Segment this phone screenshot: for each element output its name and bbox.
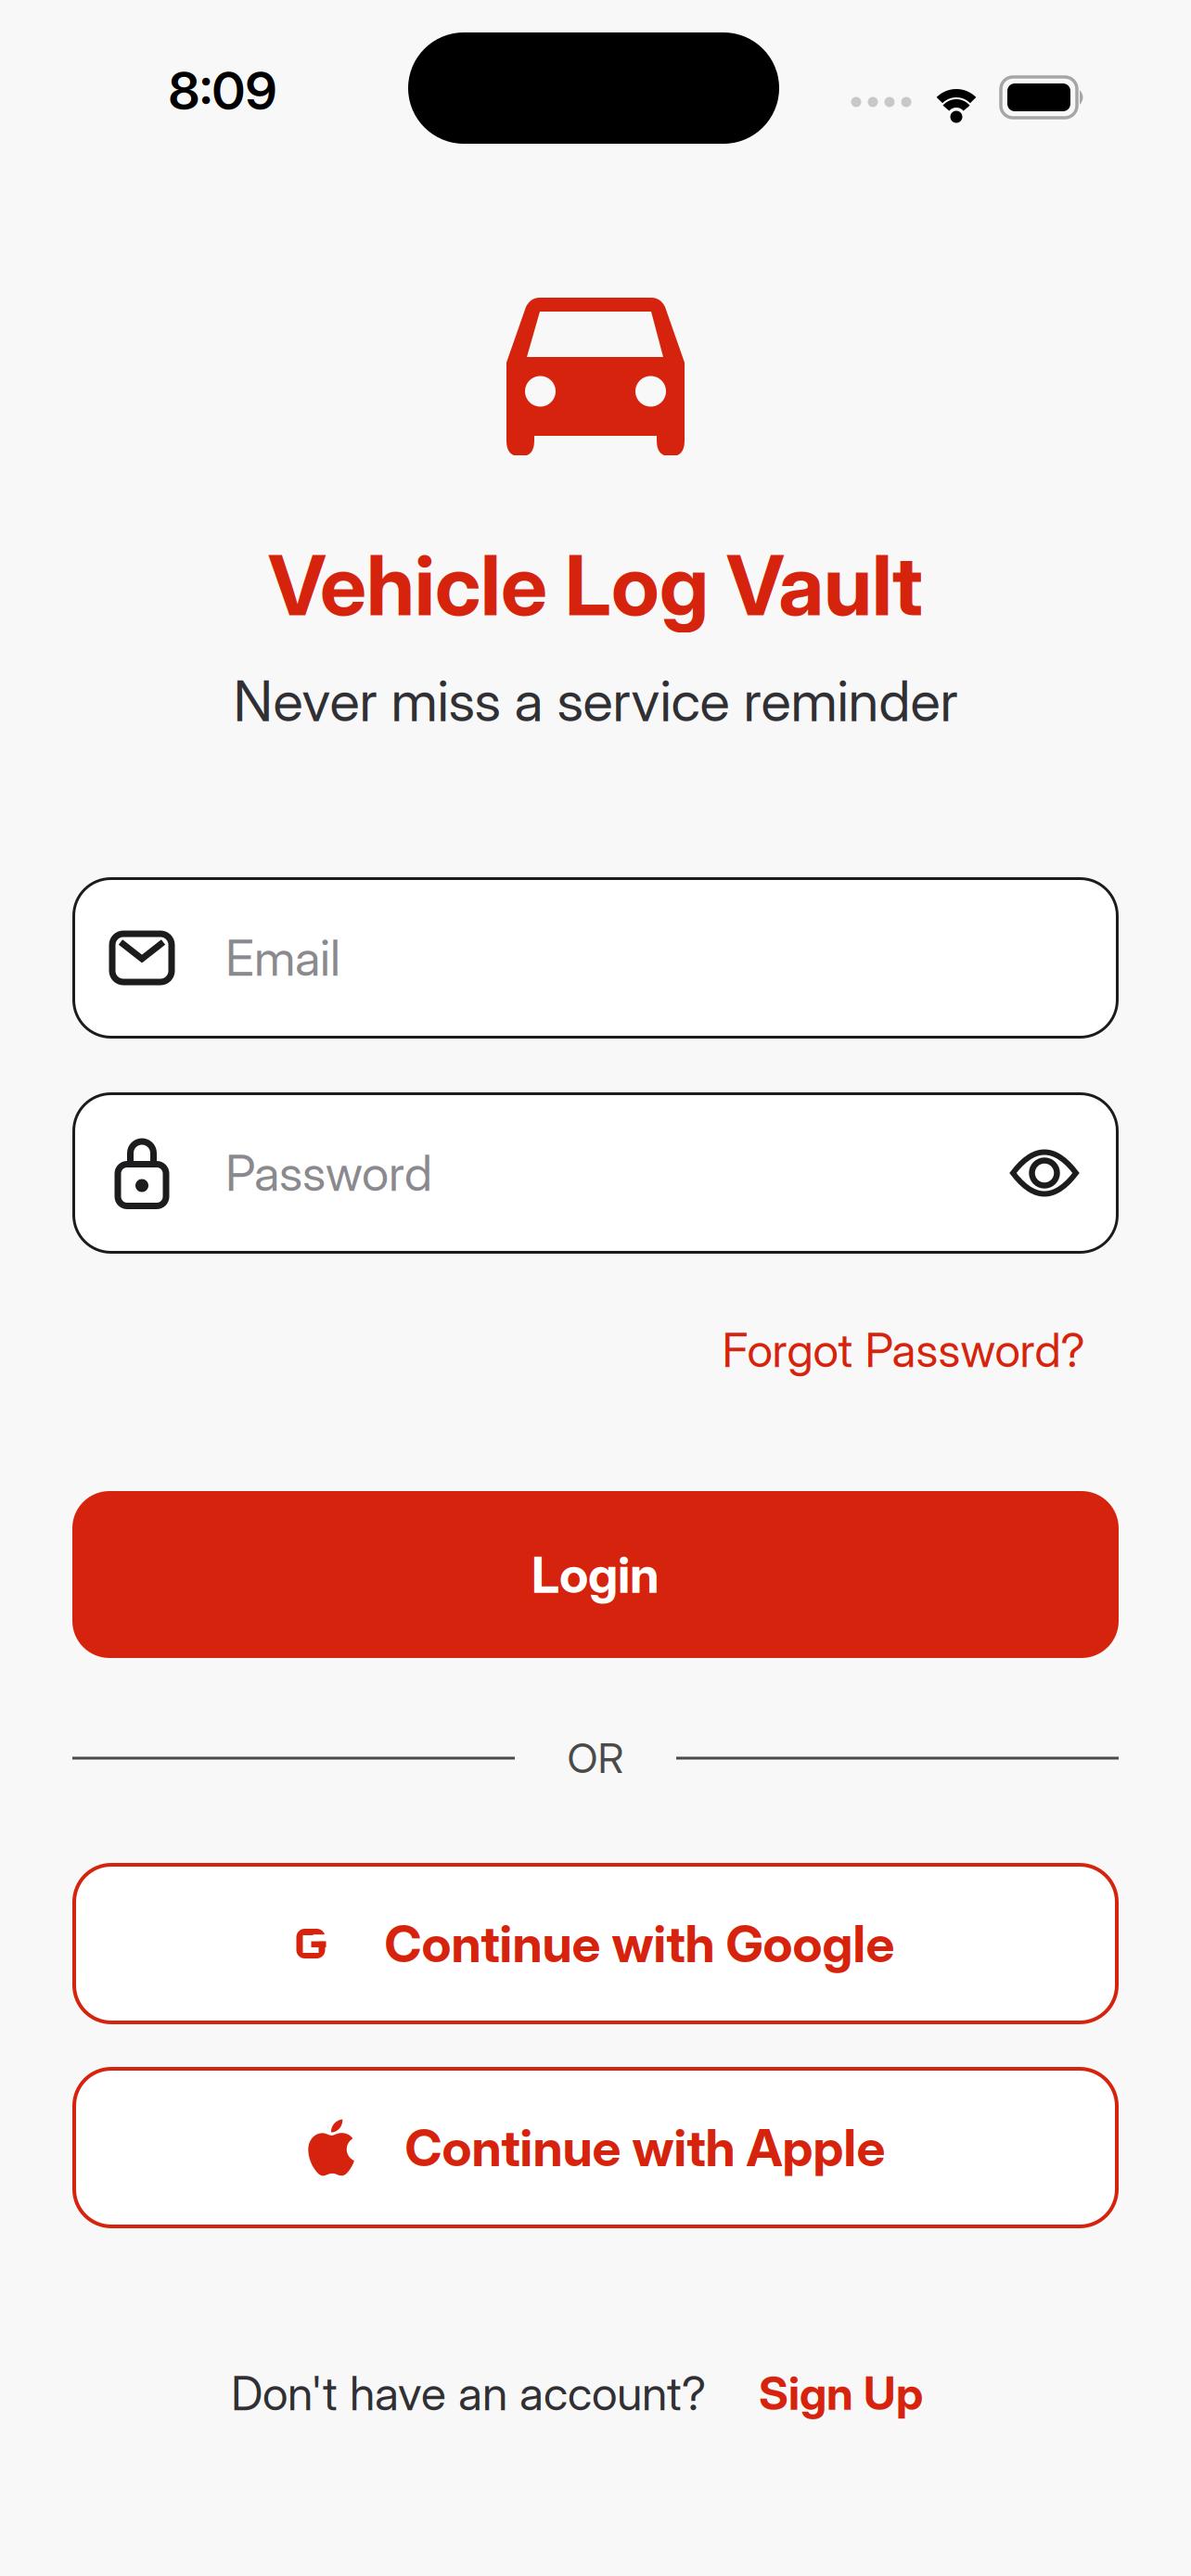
staticText: Forgot Password? — [722, 1323, 1085, 1377]
secureTextField[interactable]: Password — [72, 1092, 1119, 1254]
staticText: OR — [567, 1734, 624, 1782]
staticText: Password — [225, 1144, 432, 1202]
button[interactable]: Continue with Google — [72, 1863, 1119, 2024]
button[interactable]: Sign Up — [759, 2367, 923, 2420]
staticText: Never miss a service reminder — [233, 668, 958, 734]
button[interactable]: Forgot Password? — [722, 1323, 1085, 1377]
textField[interactable]: Email — [72, 877, 1119, 1039]
staticText: Don't have an account? — [231, 2366, 706, 2421]
staticText: Email — [225, 929, 340, 987]
staticText: Sign Up — [759, 2367, 923, 2420]
staticText: Continue with Google — [384, 1914, 895, 1974]
staticText: 8:09 — [168, 60, 277, 122]
staticText: Continue with Apple — [405, 2118, 885, 2178]
button[interactable]: Show password — [999, 1140, 1090, 1206]
staticText: Login — [531, 1545, 660, 1604]
button[interactable]: Login — [72, 1491, 1119, 1658]
button[interactable]: Continue with Apple — [72, 2067, 1119, 2228]
staticText: Vehicle Log Vault — [268, 536, 923, 634]
